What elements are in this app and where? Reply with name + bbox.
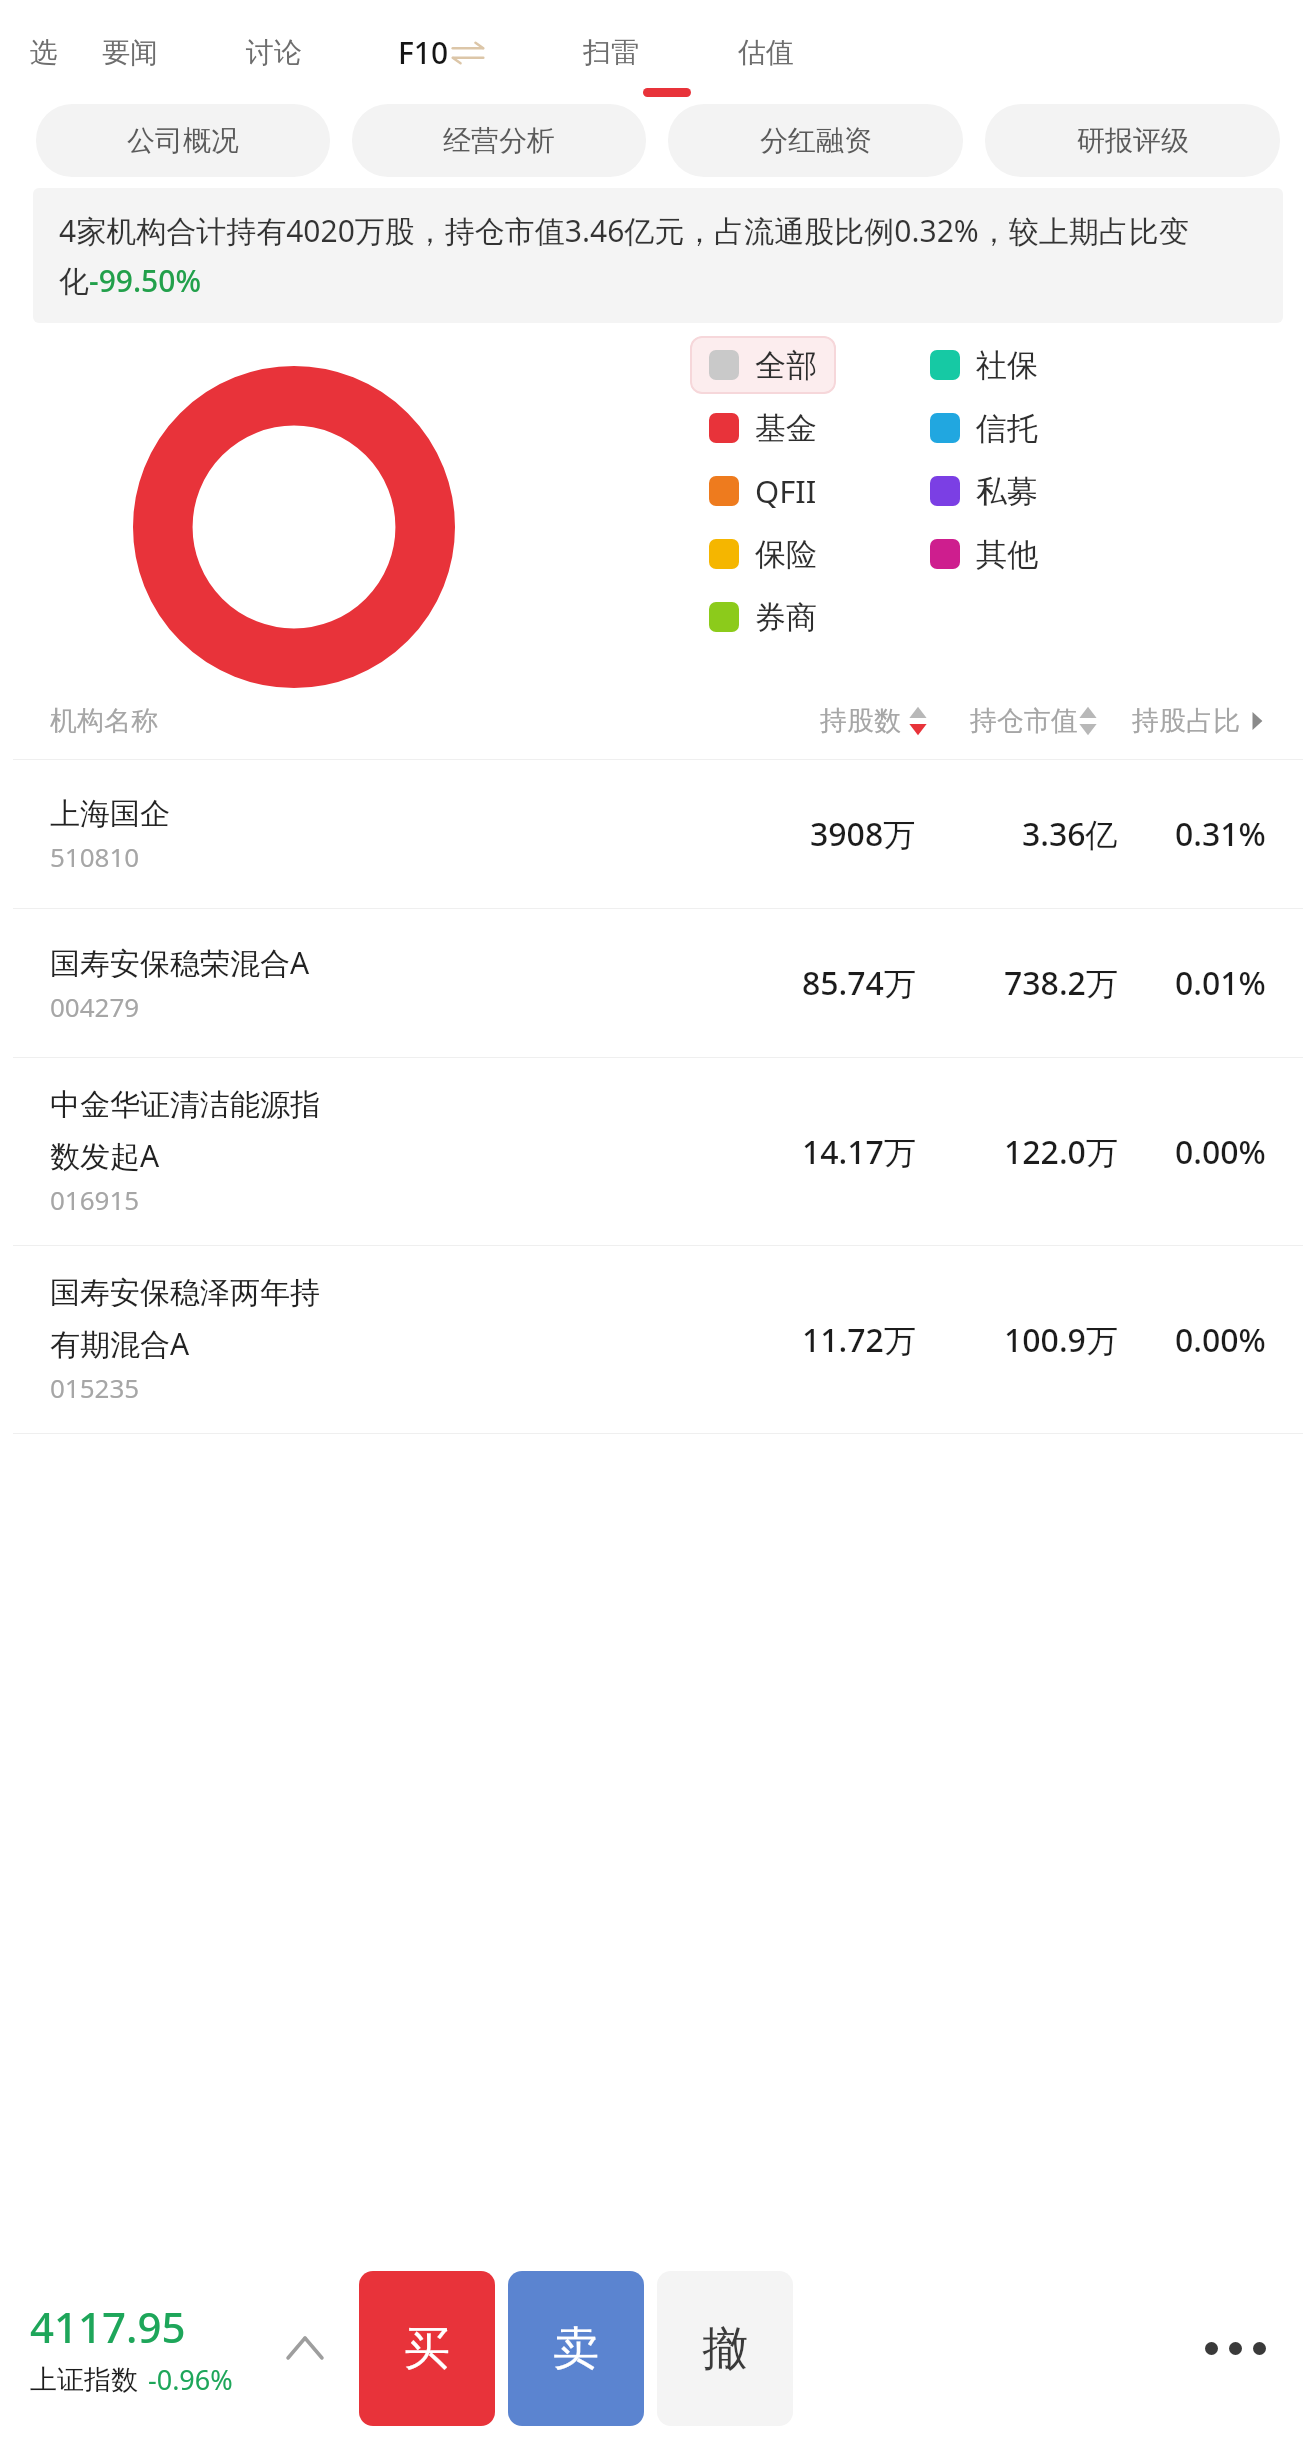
button[interactable]: 4117.95 — [30, 2298, 233, 2398]
button[interactable]: 研报评级 — [985, 104, 1280, 177]
button[interactable]: 社保 — [930, 336, 1038, 394]
staticText: 0.00% — [1175, 1318, 1266, 1362]
staticText: 讨论 — [246, 35, 302, 70]
staticText: 买 — [404, 2320, 450, 2378]
staticText: -0.96% — [148, 2361, 233, 2398]
button[interactable]: 讨论 — [202, 0, 346, 104]
button[interactable]: 信托 — [930, 399, 1038, 457]
button[interactable]: 上海国企 — [0, 760, 1316, 908]
staticText: 国寿安保稳泽两年持 有期混合A — [50, 1274, 320, 1364]
staticText: 0.00% — [1175, 1130, 1266, 1174]
staticText: 私募 — [976, 472, 1038, 511]
button[interactable]: Expand — [277, 2320, 333, 2376]
staticText: 持仓市值 — [970, 704, 1078, 738]
staticText: 信托 — [976, 409, 1038, 448]
staticText: 738.2万 — [1004, 961, 1118, 1005]
staticText: 中金华证清洁能源指 数发起A — [50, 1086, 320, 1176]
staticText: 持股数 — [820, 704, 901, 738]
button[interactable]: 中金华证清洁能源指 数发起A — [0, 1058, 1316, 1245]
staticText: 基金 — [755, 409, 817, 448]
button[interactable]: 持仓市值 — [970, 704, 1098, 738]
staticText: 016915 — [50, 1182, 140, 1217]
staticText: 上海国企 — [50, 795, 170, 833]
other: Switch — [451, 38, 485, 68]
staticText: 0.01% — [1175, 961, 1266, 1005]
staticText: 4117.95 — [30, 2298, 186, 2355]
button[interactable]: 卖 — [508, 2271, 644, 2426]
staticText: QFII — [755, 470, 817, 512]
button[interactable]: 私募 — [930, 462, 1038, 520]
button[interactable]: 国寿安保稳泽两年持 有期混合A — [0, 1246, 1316, 1433]
button[interactable]: 分红融资 — [668, 104, 963, 177]
staticText: 004279 — [50, 989, 140, 1024]
staticText: 上证指数 — [30, 2363, 138, 2397]
button[interactable]: F10 — [346, 0, 536, 104]
button[interactable]: 保险 — [690, 525, 836, 583]
staticText: 国寿安保稳荣混合A — [50, 942, 310, 983]
staticText: 卖 — [553, 2320, 599, 2378]
button[interactable]: 基金 — [690, 399, 836, 457]
button[interactable]: QFII — [690, 462, 836, 520]
button[interactable]: 扫雷 — [536, 0, 686, 104]
staticText: 保险 — [755, 535, 817, 574]
staticText: 研报评级 — [1077, 123, 1189, 158]
staticText: 要闻 — [102, 35, 158, 70]
staticText: 持股占比 — [1132, 704, 1240, 738]
staticText: 4家机构合计持有4020万股，持仓市值3.46亿元，占流通股比例0.32%，较上… — [59, 210, 1257, 301]
button[interactable]: 持股数 — [820, 704, 928, 738]
button[interactable]: More — [1180, 2253, 1290, 2443]
staticText: 选 — [30, 35, 58, 70]
staticText: 11.72万 — [802, 1318, 916, 1362]
staticText: 全部 — [755, 346, 817, 385]
button[interactable]: 撤 — [657, 2271, 793, 2426]
staticText: 14.17万 — [802, 1130, 916, 1174]
staticText: 分红融资 — [760, 123, 872, 158]
button[interactable]: 选 — [0, 0, 58, 104]
button[interactable]: 估值 — [686, 0, 846, 104]
staticText: 3908万 — [810, 812, 916, 856]
staticText: 100.9万 — [1004, 1318, 1118, 1362]
button[interactable]: 买 — [359, 2271, 495, 2426]
staticText: 经营分析 — [443, 123, 555, 158]
staticText: 85.74万 — [802, 961, 916, 1005]
staticText: 机构名称 — [50, 704, 158, 738]
button[interactable]: 持股占比 — [1132, 704, 1266, 738]
staticText: 社保 — [976, 346, 1038, 385]
button[interactable]: 经营分析 — [352, 104, 646, 177]
staticText: 其他 — [976, 535, 1038, 574]
button[interactable]: 其他 — [930, 525, 1038, 583]
staticText: 122.0万 — [1004, 1130, 1118, 1174]
staticText: F10 — [398, 32, 449, 73]
staticText: 公司概况 — [127, 123, 239, 158]
button[interactable]: 券商 — [690, 588, 836, 646]
staticText: 撤 — [702, 2320, 748, 2378]
button[interactable]: 公司概况 — [36, 104, 330, 177]
other: More columns — [1248, 712, 1266, 730]
button[interactable]: 国寿安保稳荣混合A — [0, 909, 1316, 1057]
button[interactable]: 要闻 — [58, 0, 202, 104]
staticText: 510810 — [50, 839, 140, 874]
staticText: 估值 — [738, 35, 794, 70]
button[interactable]: 全部 — [690, 336, 836, 394]
staticText: 券商 — [755, 598, 817, 637]
staticText: 3.36亿 — [1022, 812, 1118, 856]
staticText: 0.31% — [1175, 812, 1266, 856]
staticText: 015235 — [50, 1370, 140, 1405]
staticText: 扫雷 — [583, 35, 639, 70]
